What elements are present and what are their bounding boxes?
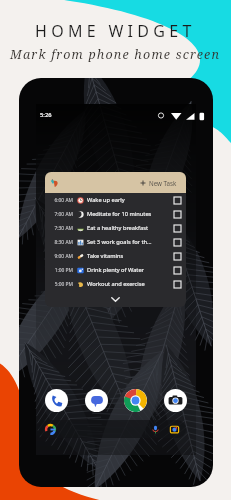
staticText: 9:00 AM bbox=[51, 253, 73, 260]
staticText: 1:00 PM bbox=[51, 267, 73, 274]
button[interactable]: 1:00 PM bbox=[45, 263, 186, 277]
staticText: 6:00 AM bbox=[51, 197, 73, 204]
button[interactable]: 6:00 AM bbox=[45, 193, 186, 207]
button[interactable]: 8:30 AM bbox=[45, 235, 186, 249]
staticText: Take vitamins bbox=[87, 252, 124, 260]
staticText: 7:30 AM bbox=[51, 225, 73, 232]
staticText: 5:26 bbox=[40, 111, 52, 119]
staticText: Meditate for 10 minutes bbox=[87, 210, 152, 218]
staticText: 5:00 PM bbox=[51, 281, 73, 288]
button[interactable]: 7:00 AM bbox=[45, 207, 186, 221]
button[interactable]: Camera bbox=[164, 389, 187, 412]
staticText: Set 3 work goals for th... bbox=[87, 238, 152, 246]
button[interactable]: Messages bbox=[85, 389, 108, 412]
button[interactable]: 5:00 PM bbox=[45, 277, 186, 291]
staticText: New Task bbox=[149, 179, 177, 187]
staticText: Drink plenty of Water bbox=[87, 266, 144, 274]
button[interactable]: Phone bbox=[45, 389, 68, 412]
staticText: 8:30 AM bbox=[51, 239, 73, 246]
staticText: Wake up early bbox=[87, 196, 125, 204]
staticText: Mark from phone home screen bbox=[10, 46, 221, 63]
button[interactable]: 9:00 AM bbox=[45, 249, 186, 263]
button[interactable]: 7:30 AM bbox=[45, 221, 186, 235]
staticText: Workout and exercise bbox=[87, 280, 145, 288]
staticText: 7:00 AM bbox=[51, 211, 73, 218]
staticText: Eat a healthy breakfast bbox=[87, 224, 148, 232]
staticText: HOME WIDGET bbox=[35, 20, 196, 42]
button[interactable]: Chrome bbox=[124, 389, 147, 412]
button[interactable]: Expand list bbox=[45, 291, 186, 307]
button[interactable]: Search bbox=[39, 420, 186, 438]
button[interactable]: New Task bbox=[45, 172, 186, 193]
